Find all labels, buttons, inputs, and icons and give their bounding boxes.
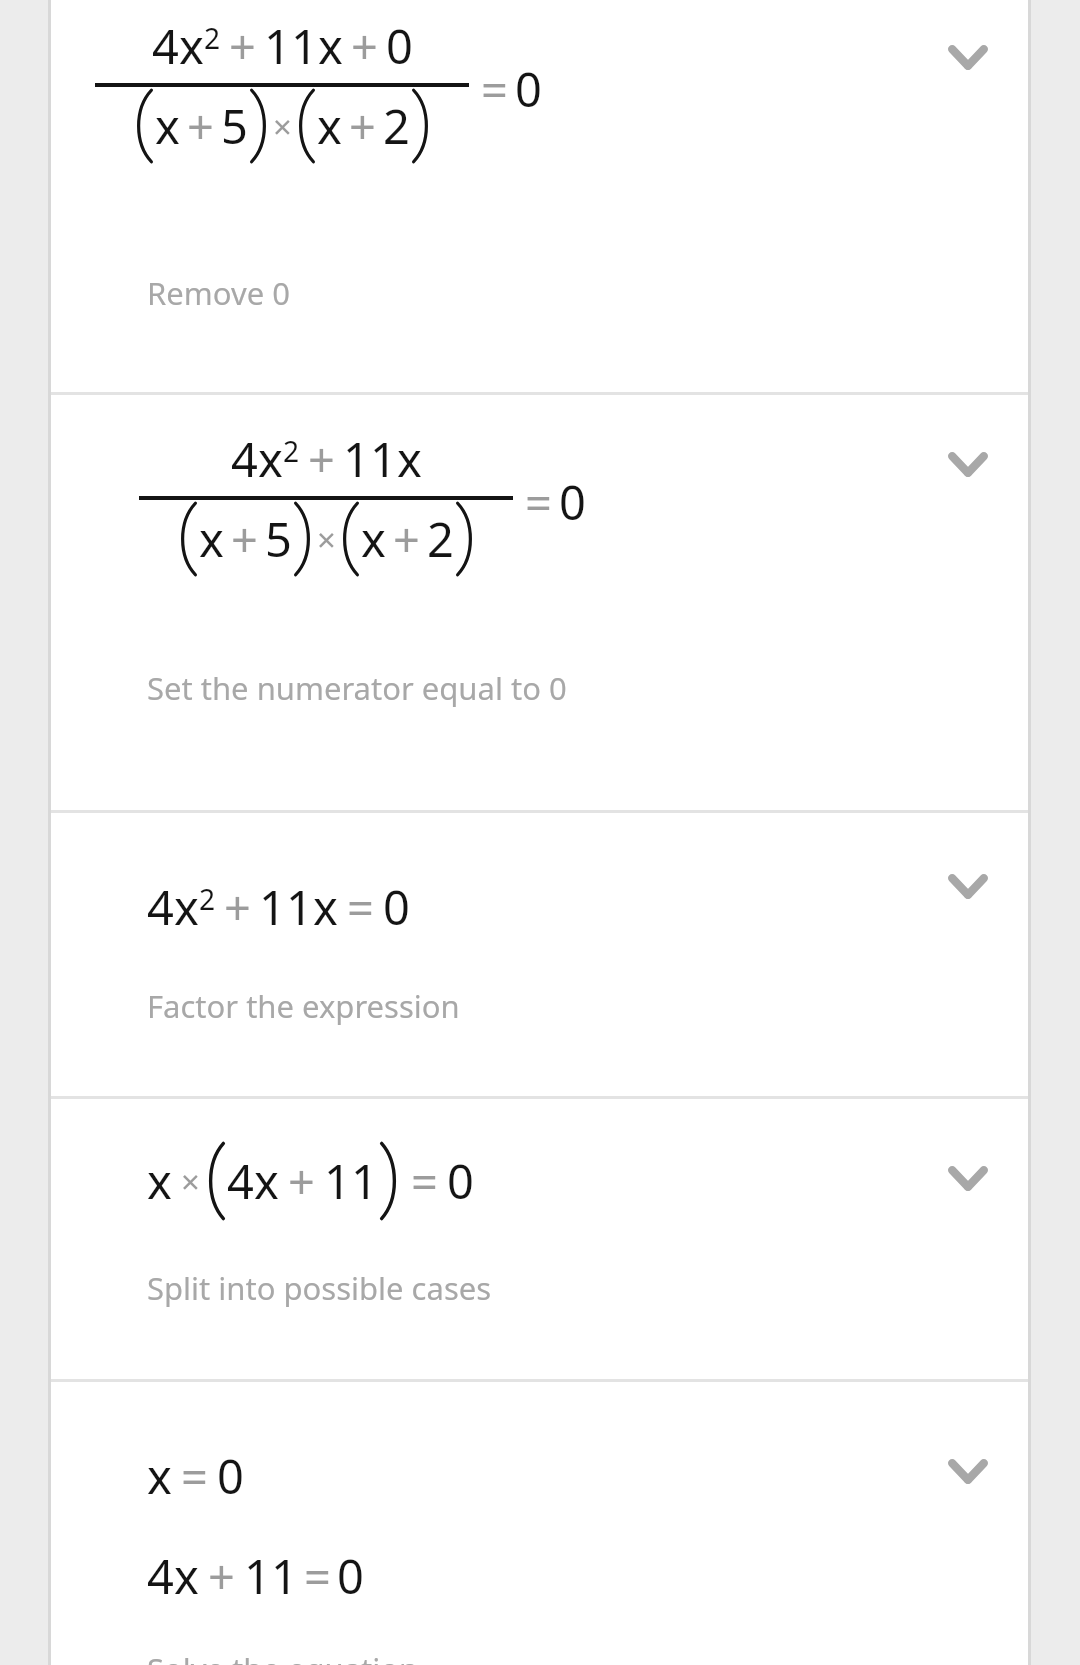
staticText: 11 <box>343 427 397 491</box>
staticText: = <box>347 875 374 939</box>
staticText: + <box>231 507 258 571</box>
staticText: 0 <box>337 1544 364 1608</box>
button[interactable]: 4 <box>51 813 1028 1096</box>
staticText: x <box>147 1149 172 1213</box>
staticText: = <box>181 1444 208 1508</box>
button[interactable]: Expand step <box>930 1440 1006 1502</box>
staticText: = <box>525 470 552 534</box>
staticText: x <box>397 427 422 491</box>
staticText: 4 <box>227 1149 254 1213</box>
staticText: x <box>147 1444 172 1508</box>
staticText: + <box>393 507 420 571</box>
staticText: Remove 0 <box>147 272 290 314</box>
staticText: + <box>229 14 256 78</box>
staticText: x <box>179 14 204 78</box>
staticText: x <box>174 875 199 939</box>
staticText: 11 <box>324 1149 378 1213</box>
staticText: + <box>208 1544 235 1608</box>
staticText: 4 <box>147 1544 174 1608</box>
staticText: x <box>199 507 224 571</box>
button[interactable]: Expand step <box>930 1147 1006 1209</box>
staticText: x <box>313 875 338 939</box>
staticText: = <box>481 57 508 121</box>
staticText: 5 <box>265 507 292 571</box>
staticText: 0 <box>386 14 413 78</box>
staticText: 0 <box>383 875 410 939</box>
staticText: 4 <box>152 14 179 78</box>
staticText: 0 <box>217 1444 244 1508</box>
staticText: 11 <box>259 875 313 939</box>
staticText: × <box>273 104 292 149</box>
staticText: + <box>351 14 378 78</box>
staticText: Factor the expression <box>147 985 460 1027</box>
staticText: 0 <box>559 470 586 534</box>
button[interactable]: 4 <box>51 395 1028 810</box>
staticText: 0 <box>447 1149 474 1213</box>
staticText: x <box>174 1544 199 1608</box>
button[interactable]: Expand step <box>930 855 1006 917</box>
staticText: 2 <box>204 19 221 57</box>
staticText: + <box>349 94 376 158</box>
staticText: 11 <box>264 14 318 78</box>
staticText: 2 <box>283 432 300 470</box>
staticText: 0 <box>515 57 542 121</box>
staticText: + <box>308 427 335 491</box>
staticText: x <box>318 14 343 78</box>
staticText: Solve the equation <box>147 1648 419 1665</box>
staticText: 4 <box>231 427 258 491</box>
staticText: x <box>254 1149 279 1213</box>
staticText: + <box>187 94 214 158</box>
staticText: 2 <box>383 94 410 158</box>
staticText: × <box>181 1159 200 1204</box>
staticText: x <box>258 427 283 491</box>
staticText: 2 <box>199 880 216 918</box>
staticText: + <box>224 875 251 939</box>
staticText: 11 <box>244 1544 298 1608</box>
button[interactable]: x <box>51 1382 1028 1665</box>
staticText: × <box>317 517 336 562</box>
staticText: x <box>317 94 342 158</box>
staticText: Set the numerator equal to 0 <box>147 667 567 709</box>
staticText: 2 <box>427 507 454 571</box>
button[interactable]: Expand step <box>930 26 1006 88</box>
button[interactable]: x <box>51 1099 1028 1379</box>
staticText: = <box>304 1544 331 1608</box>
staticText: 4 <box>147 875 174 939</box>
button[interactable]: 4 <box>51 0 1028 392</box>
staticText: x <box>361 507 386 571</box>
staticText: = <box>411 1149 438 1213</box>
staticText: x <box>155 94 180 158</box>
staticText: 5 <box>221 94 248 158</box>
button[interactable]: Expand step <box>930 433 1006 495</box>
staticText: Split into possible cases <box>147 1267 492 1309</box>
staticText: + <box>288 1149 315 1213</box>
